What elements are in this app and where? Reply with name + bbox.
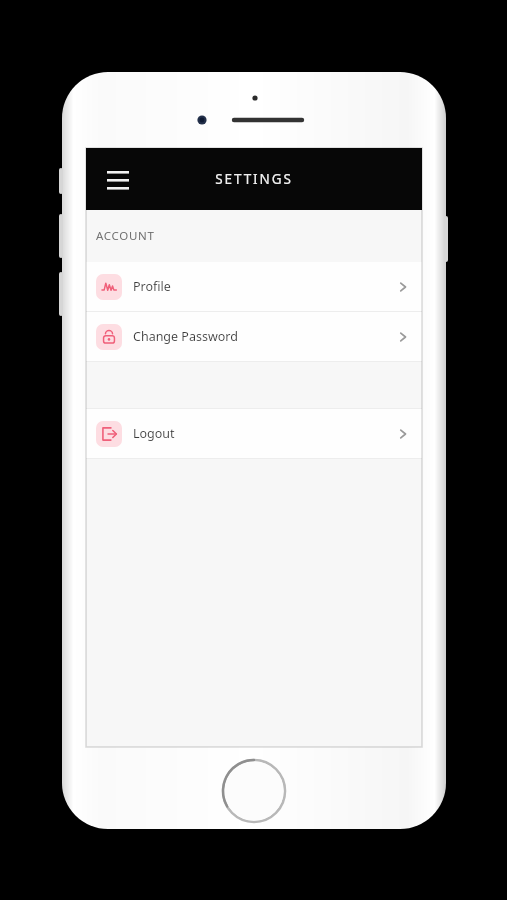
staticText: Change Password xyxy=(133,328,238,345)
button[interactable]: Change Password xyxy=(86,312,422,361)
staticText: ACCOUNT xyxy=(96,228,155,244)
staticText: Logout xyxy=(133,425,175,442)
button[interactable]: Logout xyxy=(86,409,422,458)
staticText: Profile xyxy=(133,278,171,295)
staticText: SETTINGS xyxy=(215,170,293,188)
button[interactable]: Open navigation menu xyxy=(98,159,138,199)
button[interactable]: Profile xyxy=(86,262,422,311)
